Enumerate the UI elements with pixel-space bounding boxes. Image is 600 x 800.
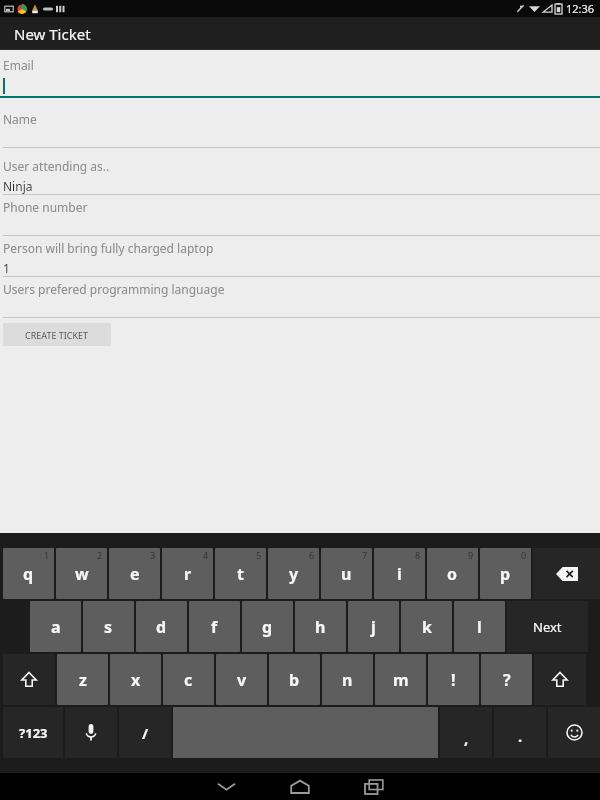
staticText: c bbox=[184, 669, 193, 691]
staticText: g bbox=[262, 616, 273, 638]
button[interactable]: Home bbox=[263, 773, 337, 800]
button[interactable]: Recent apps bbox=[337, 773, 411, 800]
staticText: Name bbox=[3, 111, 37, 127]
staticText: User attending as.. bbox=[3, 158, 110, 174]
staticText: k bbox=[422, 616, 432, 638]
button[interactable]: Shift bbox=[534, 654, 586, 705]
staticText: s bbox=[104, 616, 113, 638]
button[interactable]: k bbox=[401, 601, 452, 652]
staticText: 5 bbox=[256, 549, 262, 561]
staticText: q bbox=[23, 563, 34, 585]
staticText: 3 bbox=[150, 549, 156, 561]
button[interactable]: Backspace bbox=[533, 548, 600, 599]
staticText: h bbox=[315, 616, 326, 638]
staticText: j bbox=[371, 616, 376, 638]
staticText: v bbox=[237, 669, 247, 691]
staticText: Ninja bbox=[3, 178, 33, 194]
button[interactable]: . bbox=[494, 707, 546, 758]
button[interactable]: ! bbox=[428, 654, 479, 705]
staticText: p bbox=[500, 563, 511, 585]
staticText: 1 bbox=[44, 549, 50, 561]
button[interactable]: , bbox=[440, 707, 492, 758]
staticText: i bbox=[397, 563, 402, 585]
staticText: 9 bbox=[468, 549, 474, 561]
staticText: t bbox=[237, 563, 244, 585]
button[interactable]: CREATE TICKET bbox=[3, 323, 111, 346]
button[interactable]: ? bbox=[481, 654, 532, 705]
staticText: y bbox=[289, 563, 299, 585]
staticText: u bbox=[341, 563, 352, 585]
button[interactable]: b bbox=[269, 654, 320, 705]
button[interactable]: f bbox=[189, 601, 240, 652]
staticText: 1 bbox=[3, 260, 10, 276]
button[interactable]: x bbox=[110, 654, 161, 705]
staticText: 0 bbox=[521, 549, 527, 561]
staticText: d bbox=[156, 616, 167, 638]
staticText: a bbox=[51, 616, 61, 638]
staticText: n bbox=[342, 669, 353, 691]
staticText: ? bbox=[503, 669, 511, 691]
staticText: Next bbox=[533, 618, 562, 636]
button[interactable]: q bbox=[3, 548, 54, 599]
staticText: 4 bbox=[203, 549, 209, 561]
button[interactable]: Emoji bbox=[548, 707, 600, 758]
button[interactable]: a bbox=[30, 601, 81, 652]
button[interactable]: Next bbox=[507, 601, 588, 652]
staticText: ?123 bbox=[19, 724, 48, 742]
button[interactable]: z bbox=[57, 654, 108, 705]
staticText: 6 bbox=[309, 549, 315, 561]
staticText: z bbox=[79, 669, 87, 691]
button[interactable]: Voice input bbox=[65, 707, 117, 758]
button[interactable]: / bbox=[119, 707, 171, 758]
button[interactable]: o bbox=[427, 548, 478, 599]
staticText: , bbox=[464, 728, 469, 748]
staticText: / bbox=[142, 723, 149, 743]
staticText: x bbox=[131, 669, 141, 691]
staticText: o bbox=[447, 563, 458, 585]
staticText: 8 bbox=[415, 549, 421, 561]
button[interactable]: d bbox=[136, 601, 187, 652]
staticText: 12:36 bbox=[566, 1, 595, 16]
button[interactable]: g bbox=[242, 601, 293, 652]
staticText: Email bbox=[3, 57, 34, 73]
button[interactable]: s bbox=[83, 601, 134, 652]
button[interactable]: h bbox=[295, 601, 346, 652]
staticText: b bbox=[289, 669, 300, 691]
button[interactable]: n bbox=[322, 654, 373, 705]
staticText: 2 bbox=[97, 549, 103, 561]
button[interactable]: r bbox=[162, 548, 213, 599]
button[interactable]: l bbox=[454, 601, 505, 652]
staticText: e bbox=[130, 563, 140, 585]
staticText: New Ticket bbox=[14, 24, 91, 44]
button[interactable]: m bbox=[375, 654, 426, 705]
button[interactable]: i bbox=[374, 548, 425, 599]
button[interactable]: t bbox=[215, 548, 266, 599]
staticText: Users prefered programming language bbox=[3, 281, 225, 297]
button[interactable]: c bbox=[163, 654, 214, 705]
staticText: CREATE TICKET bbox=[25, 329, 89, 341]
staticText: Person will bring fully charged laptop bbox=[3, 240, 214, 256]
staticText: ! bbox=[451, 669, 456, 691]
button[interactable]: e bbox=[109, 548, 160, 599]
staticText: . bbox=[518, 726, 523, 746]
button[interactable]: p bbox=[480, 548, 531, 599]
button[interactable]: y bbox=[268, 548, 319, 599]
button[interactable]: Back bbox=[189, 773, 263, 800]
button[interactable]: u bbox=[321, 548, 372, 599]
button[interactable]: v bbox=[216, 654, 267, 705]
staticText: w bbox=[75, 563, 89, 585]
staticText: l bbox=[477, 616, 482, 638]
button[interactable]: j bbox=[348, 601, 399, 652]
staticText: 7 bbox=[362, 549, 368, 561]
staticText: m bbox=[393, 669, 409, 691]
staticText: Phone number bbox=[3, 199, 88, 215]
button[interactable]: w bbox=[56, 548, 107, 599]
button[interactable]: Shift bbox=[3, 654, 55, 705]
button[interactable]: ?123 bbox=[3, 707, 63, 758]
staticText: r bbox=[184, 563, 192, 585]
staticText: f bbox=[211, 616, 218, 638]
